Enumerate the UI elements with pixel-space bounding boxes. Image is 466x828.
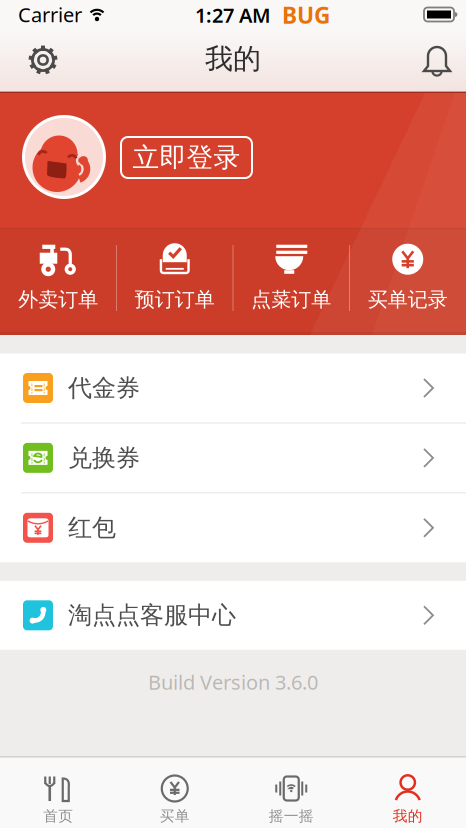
button[interactable]: 买单记录 <box>350 231 466 321</box>
staticText: 点菜订单 <box>251 287 331 312</box>
staticText: Carrier <box>18 1 82 28</box>
button[interactable]: 淘点点客服中心 <box>0 581 466 650</box>
button[interactable]: 外卖订单 <box>0 231 116 321</box>
button[interactable]: 首页 <box>0 756 116 828</box>
staticText: 我的 <box>393 807 423 825</box>
staticText: 立即登录 <box>132 141 240 174</box>
staticText: Build Version 3.6.0 <box>148 669 318 695</box>
button[interactable]: 点菜订单 <box>233 231 349 321</box>
staticText: 兑换券 <box>68 443 140 473</box>
staticText: 外卖订单 <box>18 287 98 312</box>
staticText: 买单记录 <box>368 287 448 312</box>
button[interactable]: 我的 <box>349 756 466 828</box>
staticText: 红包 <box>68 513 116 543</box>
staticText: 首页 <box>43 807 73 825</box>
button[interactable]: 立即登录 <box>121 137 252 178</box>
staticText: 淘点点客服中心 <box>68 601 236 630</box>
button[interactable]: Notifications <box>415 38 459 82</box>
button[interactable]: 兑换券 <box>0 423 466 492</box>
staticText: 我的 <box>205 42 261 76</box>
button[interactable]: 红包 <box>0 493 466 562</box>
staticText: 摇一摇 <box>269 807 314 825</box>
button[interactable]: 代金券 <box>0 353 466 422</box>
button[interactable]: 预订订单 <box>117 231 233 321</box>
staticText: 1:27 AM <box>195 2 271 28</box>
button[interactable]: 摇一摇 <box>233 756 349 828</box>
button[interactable]: Settings <box>21 38 65 82</box>
staticText: BUG <box>282 0 330 30</box>
staticText: 预订订单 <box>135 287 215 312</box>
button[interactable]: 买单 <box>116 756 233 828</box>
staticText: 代金券 <box>68 373 140 403</box>
staticText: 买单 <box>160 807 190 825</box>
